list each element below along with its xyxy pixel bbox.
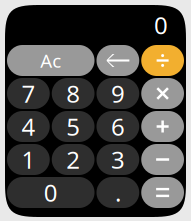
button[interactable]: 3 (96, 144, 139, 175)
button[interactable]: Divide (141, 45, 184, 76)
staticText: 1 (21, 144, 35, 175)
button[interactable]: Equals (141, 177, 184, 208)
button[interactable]: 8 (52, 78, 95, 109)
button[interactable]: 4 (7, 111, 50, 142)
staticText: 0 (154, 9, 168, 41)
button[interactable]: Delete (96, 45, 139, 76)
staticText: 5 (66, 111, 80, 142)
button[interactable]: Ac (7, 45, 94, 76)
staticText: 3 (111, 144, 125, 175)
button[interactable]: 7 (7, 78, 50, 109)
button[interactable]: 6 (96, 111, 139, 142)
button[interactable]: Subtract (141, 144, 184, 175)
button[interactable]: Add (141, 111, 184, 142)
staticText: 7 (21, 78, 35, 109)
button[interactable]: . (96, 177, 139, 208)
button[interactable]: 5 (52, 111, 95, 142)
staticText: 4 (21, 111, 35, 142)
button[interactable]: Multiply (141, 78, 184, 109)
button[interactable]: 2 (52, 144, 95, 175)
staticText: . (115, 177, 121, 208)
staticText: 8 (66, 78, 80, 109)
staticText: 9 (111, 78, 125, 109)
staticText: 6 (111, 111, 125, 142)
button[interactable]: 9 (96, 78, 139, 109)
staticText: Ac (40, 48, 61, 73)
staticText: 2 (66, 144, 80, 175)
button[interactable]: 1 (7, 144, 50, 175)
staticText: 0 (44, 177, 58, 208)
button[interactable]: 0 (7, 177, 94, 208)
